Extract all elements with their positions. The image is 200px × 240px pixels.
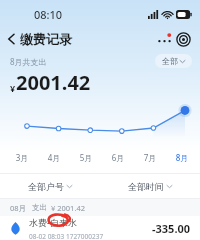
staticText: 缴费记录 [20,31,72,47]
button[interactable]: 全部 [155,54,192,68]
staticText: 8月共支出 [10,56,47,67]
staticText: ¥ 2001.42 [51,203,85,213]
button[interactable]: 全部时间 [100,174,200,198]
staticText: 2001.42 [16,69,91,96]
staticText: 8月 [166,152,198,163]
button[interactable]: 全部户号 [0,174,100,198]
staticText: -335.00 [152,221,191,236]
staticText: 6月 [102,152,134,163]
staticText: ¥ [10,82,16,94]
button[interactable]: 水费-自来水 [0,216,200,240]
staticText: 全部时间 [128,181,164,192]
staticText: 4月 [38,152,70,163]
button[interactable]: Back [0,29,76,49]
other: Back [7,33,16,45]
staticText: 08-02 08:03 1727000237 [29,232,104,240]
staticText: 全部户号 [28,181,64,192]
button[interactable]: More options [156,31,173,48]
staticText: 水费-自来水 [29,216,77,228]
staticText: 5月 [70,152,102,163]
staticText: 支出 [32,203,47,212]
staticText: 3月 [6,152,38,163]
staticText: 08:10 [34,7,63,22]
staticText: 08月 [10,203,27,213]
button[interactable]: Scan [176,32,191,47]
staticText: 全部 [162,56,178,66]
staticText: 7月 [134,152,166,163]
